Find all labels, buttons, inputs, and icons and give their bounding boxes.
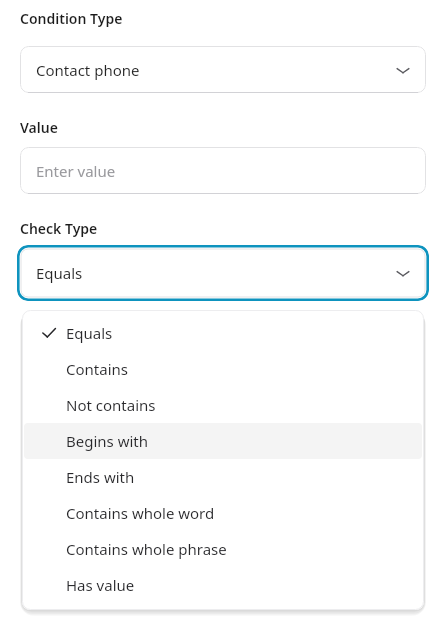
staticText: Check Type: [20, 219, 98, 238]
button[interactable]: Not contains: [24, 387, 422, 423]
staticText: Contains: [66, 359, 128, 379]
button[interactable]: Begins with: [24, 423, 422, 459]
button[interactable]: Has value: [24, 567, 422, 603]
button[interactable]: Ends with: [24, 459, 422, 495]
staticText: Ends with: [66, 467, 135, 487]
staticText: Not contains: [66, 395, 156, 415]
staticText: Equals: [36, 263, 83, 283]
staticText: Has value: [66, 575, 135, 595]
button[interactable]: Contains: [24, 351, 422, 387]
staticText: Contact phone: [36, 60, 140, 80]
button[interactable]: Check Type, Equals: [17, 245, 429, 301]
button[interactable]: Equals: [24, 315, 422, 351]
staticText: Condition Type: [20, 9, 123, 28]
staticText: Contains whole word: [66, 503, 215, 523]
button[interactable]: Contains whole phrase: [24, 531, 422, 567]
button[interactable]: Contains whole word: [24, 495, 422, 531]
staticText: Begins with: [66, 431, 149, 451]
staticText: Enter value: [36, 161, 116, 181]
button[interactable]: Condition Type, Contact phone: [20, 46, 426, 93]
button[interactable]: Value, Enter value: [20, 147, 426, 194]
staticText: Equals: [66, 323, 113, 343]
staticText: Value: [20, 118, 58, 137]
staticText: Contains whole phrase: [66, 539, 227, 559]
